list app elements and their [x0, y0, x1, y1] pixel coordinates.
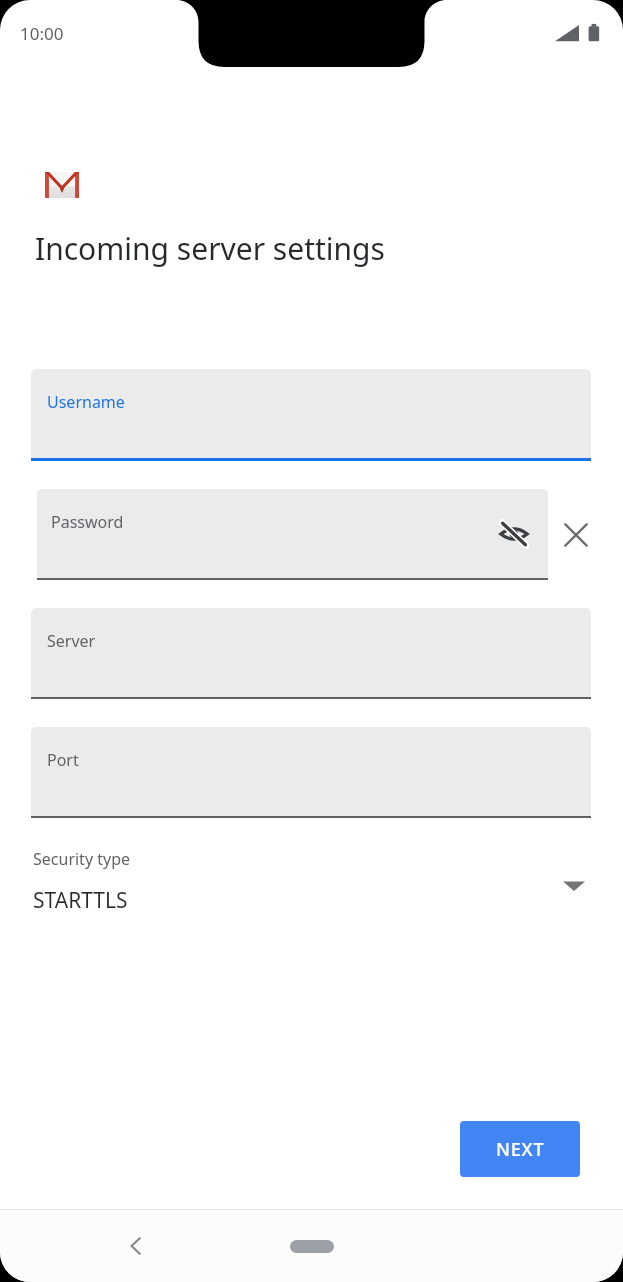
staticText: Username — [47, 391, 125, 413]
button[interactable]: Hide password — [494, 514, 534, 554]
staticText: Incoming server settings — [35, 228, 385, 269]
button[interactable]: Port — [31, 727, 591, 818]
staticText: Security type — [33, 848, 131, 870]
staticText: STARTTLS — [33, 886, 128, 915]
staticText: Server — [47, 630, 96, 652]
staticText: Password — [51, 511, 124, 533]
button[interactable]: Back — [113, 1223, 159, 1269]
button[interactable]: Home — [280, 1226, 344, 1266]
staticText: Port — [47, 749, 79, 771]
button[interactable]: Username — [31, 369, 591, 461]
staticText: 10:00 — [20, 22, 64, 45]
button[interactable]: NEXT — [460, 1121, 580, 1177]
button[interactable]: Security type — [33, 848, 591, 924]
staticText: NEXT — [496, 1137, 545, 1162]
button[interactable]: Password — [37, 489, 548, 580]
button[interactable]: Server — [31, 608, 591, 699]
button[interactable]: Clear — [554, 513, 598, 557]
